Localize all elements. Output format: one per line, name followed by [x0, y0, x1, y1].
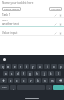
- staticText: z: [10, 79, 12, 83]
- staticText: c: [23, 79, 25, 83]
- button[interactable]: b: [35, 78, 41, 83]
- button[interactable]: m: [49, 78, 55, 83]
- staticText: x: [16, 79, 18, 83]
- staticText: l: [58, 72, 59, 76]
- staticText: s: [11, 72, 13, 76]
- button[interactable]: Delete task: [59, 32, 62, 35]
- staticText: n: [44, 79, 46, 83]
- staticText: Name your tasklist here: [2, 1, 34, 5]
- button[interactable]: Period: [46, 85, 52, 90]
- staticText: ?123: [2, 86, 7, 89]
- staticText: Add Task: [51, 8, 61, 11]
- staticText: f: [23, 72, 24, 76]
- button[interactable]: q: [0, 64, 5, 69]
- button[interactable]: x: [14, 78, 20, 83]
- button[interactable]: Delete Tasklist: [2, 7, 21, 11]
- staticText: g: [29, 72, 31, 76]
- button[interactable]: Edit task: [54, 14, 57, 17]
- button[interactable]: a: [3, 71, 8, 76]
- staticText: Delete Tasklist: [4, 8, 20, 11]
- button[interactable]: d: [15, 71, 20, 76]
- staticText: i: [47, 65, 48, 69]
- button[interactable]: e: [12, 64, 17, 69]
- staticText: w: [7, 65, 10, 69]
- button[interactable]: Google keyboard: [3, 58, 6, 61]
- staticText: ,: [13, 86, 14, 90]
- button[interactable]: Symbols: [0, 85, 9, 90]
- staticText: d: [17, 72, 19, 76]
- button[interactable]: Enter: [53, 85, 64, 90]
- staticText: another text: [2, 22, 19, 26]
- staticText: r: [20, 65, 22, 69]
- button[interactable]: k: [48, 71, 54, 76]
- button[interactable]: c: [21, 78, 27, 83]
- staticText: e: [14, 65, 16, 69]
- button[interactable]: n: [42, 78, 48, 83]
- button[interactable]: Edit task: [54, 23, 57, 26]
- staticText: k: [50, 72, 52, 76]
- staticText: Task 2: [2, 19, 8, 22]
- staticText: j: [44, 72, 45, 76]
- staticText: h: [36, 72, 38, 76]
- button[interactable]: z: [8, 78, 13, 83]
- button[interactable]: g: [27, 71, 33, 76]
- button[interactable]: u: [37, 64, 43, 69]
- button[interactable]: o: [51, 64, 57, 69]
- button[interactable]: y: [30, 64, 36, 69]
- button[interactable]: v: [28, 78, 34, 83]
- button[interactable]: Delete task: [59, 14, 62, 17]
- button[interactable]: Delete task: [59, 23, 62, 26]
- staticText: Value input: [2, 31, 18, 35]
- button[interactable]: s: [9, 71, 14, 76]
- button[interactable]: Comma: [10, 85, 16, 90]
- staticText: b: [37, 79, 39, 83]
- button[interactable]: Add Task: [49, 7, 62, 11]
- button[interactable]: r: [18, 64, 23, 69]
- button[interactable]: w: [6, 64, 11, 69]
- button[interactable]: Shift: [0, 78, 7, 83]
- button[interactable]: f: [21, 71, 26, 76]
- staticText: u: [39, 65, 41, 69]
- button[interactable]: Edit task: [54, 32, 57, 35]
- button[interactable]: i: [44, 64, 50, 69]
- staticText: y: [32, 65, 34, 69]
- button[interactable]: t: [24, 64, 29, 69]
- button[interactable]: l: [55, 71, 61, 76]
- button[interactable]: h: [34, 71, 40, 76]
- staticText: .: [49, 86, 50, 90]
- staticText: v: [30, 79, 32, 83]
- staticText: p: [60, 65, 62, 69]
- button[interactable]: j: [41, 71, 47, 76]
- staticText: a: [5, 72, 7, 76]
- staticText: m: [51, 79, 54, 83]
- staticText: q: [2, 65, 4, 69]
- button[interactable]: p: [58, 64, 64, 69]
- staticText: t: [26, 65, 27, 69]
- staticText: Task 1: [2, 13, 11, 17]
- staticText: o: [53, 65, 55, 69]
- button[interactable]: Backspace: [56, 78, 64, 83]
